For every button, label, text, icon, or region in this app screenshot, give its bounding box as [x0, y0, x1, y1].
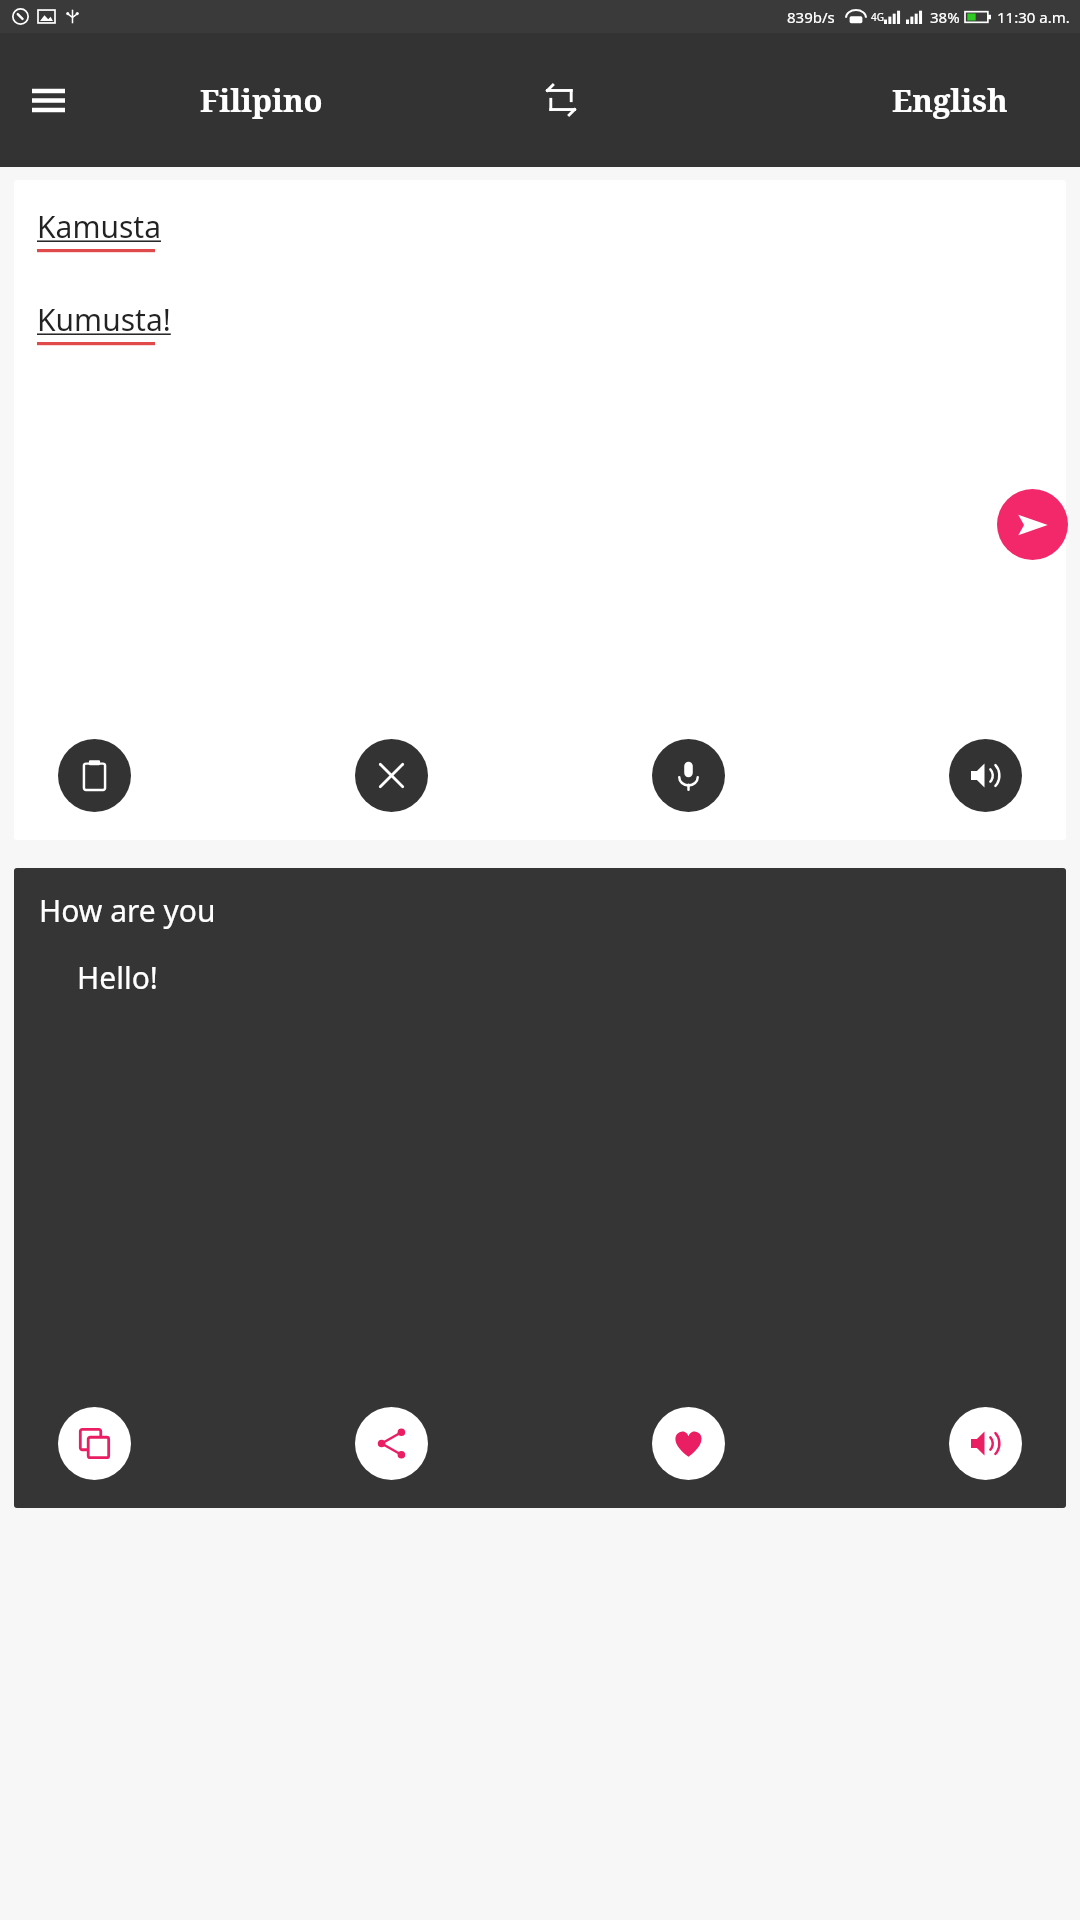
button[interactable]: Share	[355, 1407, 428, 1480]
staticText: 11:30 a.m.	[997, 7, 1070, 27]
button[interactable]: English	[892, 79, 1008, 121]
button[interactable]: Favorite	[652, 1407, 725, 1480]
staticText: Kumusta!	[37, 299, 171, 340]
staticText: 839b/s	[787, 7, 835, 27]
button[interactable]: Filipino	[200, 79, 323, 121]
button[interactable]: Voice input	[652, 739, 725, 812]
staticText: 4G	[871, 10, 884, 24]
staticText: How are you	[39, 890, 216, 931]
button[interactable]: Speak translation	[949, 1407, 1022, 1480]
staticText: Filipino	[200, 79, 323, 121]
button[interactable]: Copy	[58, 1407, 131, 1480]
button[interactable]: Swap languages	[529, 68, 593, 132]
button[interactable]: Translate	[997, 489, 1068, 560]
button[interactable]: Paste	[58, 739, 131, 812]
staticText: Kamusta	[37, 206, 162, 247]
staticText: English	[892, 79, 1008, 121]
button[interactable]: Menu	[18, 70, 78, 130]
staticText: Hello!	[77, 957, 158, 998]
staticText: 38%	[930, 7, 960, 27]
button[interactable]: Speak	[949, 739, 1022, 812]
button[interactable]: Clear	[355, 739, 428, 812]
